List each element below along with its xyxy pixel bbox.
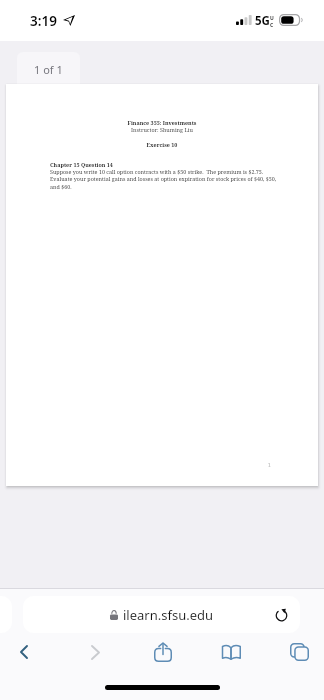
staticText: U [270,15,274,22]
button[interactable]: Reload [268,602,294,628]
staticText: 3:19 [30,12,57,30]
staticText: Chapter 15 Question 14 [50,161,113,168]
button[interactable]: 1 of 1 [17,52,80,84]
button[interactable]: Tabs [281,638,317,666]
staticText: ilearn.sfsu.edu [123,606,214,624]
staticText: Instructor: Shuming Liu [6,126,318,133]
button[interactable]: Bookmarks [213,638,249,666]
staticText: 5G [255,13,270,29]
staticText: 1 of 1 [34,62,63,77]
button[interactable]: Forward [77,638,113,666]
button[interactable]: ilearn.sfsu.edu [23,596,300,633]
staticText: Exercise 10 [6,141,318,148]
button[interactable]: Back [6,638,42,666]
button[interactable]: Share [145,638,181,666]
staticText: Suppose you write 10 call option contrac… [50,168,277,191]
staticText: C [270,22,274,29]
staticText: 1 [268,462,271,469]
staticText: Finance 355: Investments [6,119,318,126]
